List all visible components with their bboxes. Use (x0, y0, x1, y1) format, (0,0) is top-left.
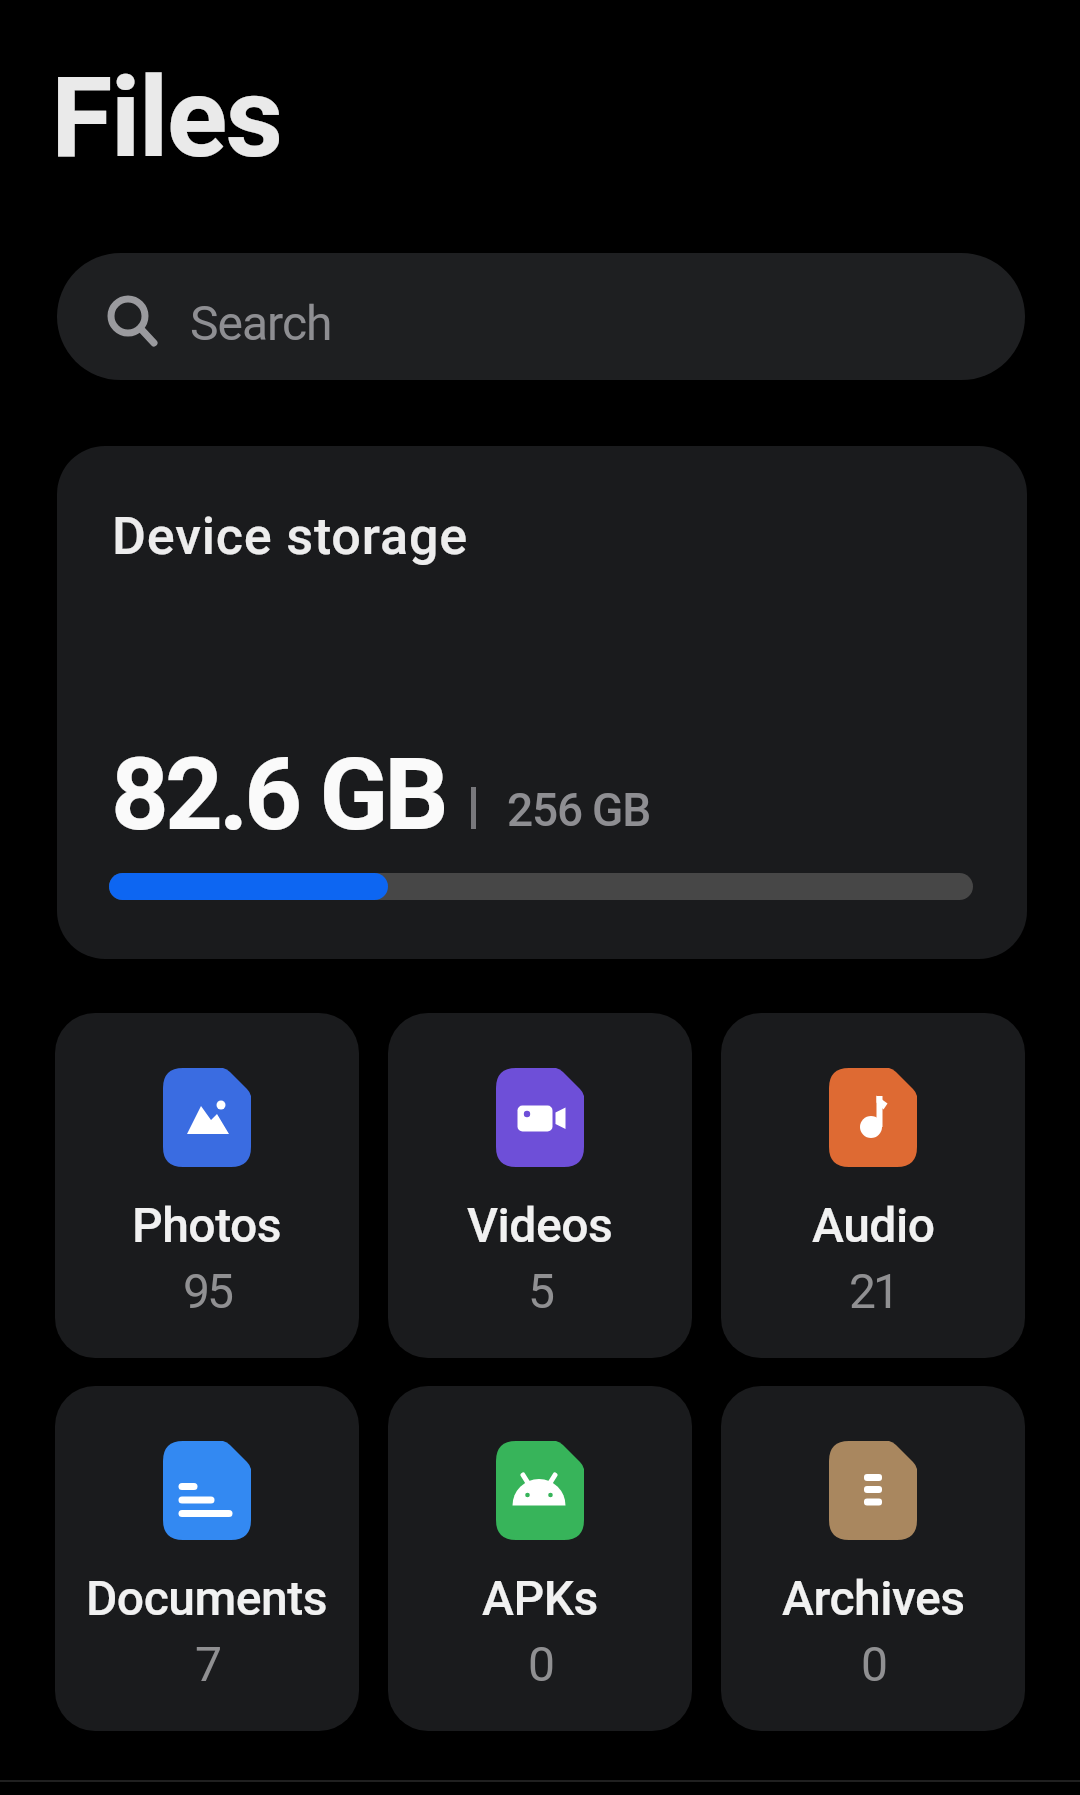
button[interactable]: Videos (388, 1013, 692, 1358)
staticText: Documents (86, 1570, 328, 1626)
button[interactable]: Documents (55, 1386, 359, 1731)
button[interactable]: Audio (721, 1013, 1025, 1358)
staticText: 256 GB (507, 783, 651, 837)
button[interactable]: Archives (721, 1386, 1025, 1731)
staticText: 21 (849, 1263, 897, 1319)
staticText: Files (51, 52, 282, 183)
staticText: Device storage (112, 506, 468, 567)
staticText: 95 (183, 1263, 231, 1319)
button[interactable]: Search (57, 253, 1025, 380)
staticText: Audio (812, 1197, 935, 1253)
staticText: 0 (528, 1636, 552, 1692)
staticText: Search (190, 295, 332, 351)
staticText: 82.6 GB (111, 735, 445, 853)
staticText: Photos (132, 1197, 282, 1253)
button[interactable]: Photos (55, 1013, 359, 1358)
staticText: 5 (528, 1263, 552, 1319)
staticText: 7 (195, 1636, 219, 1692)
staticText: Archives (782, 1570, 965, 1626)
staticText: Videos (467, 1197, 613, 1253)
staticText: APKs (482, 1570, 598, 1626)
button[interactable]: APKs (388, 1386, 692, 1731)
button[interactable]: Device storage (57, 446, 1027, 959)
staticText: 0 (861, 1636, 885, 1692)
